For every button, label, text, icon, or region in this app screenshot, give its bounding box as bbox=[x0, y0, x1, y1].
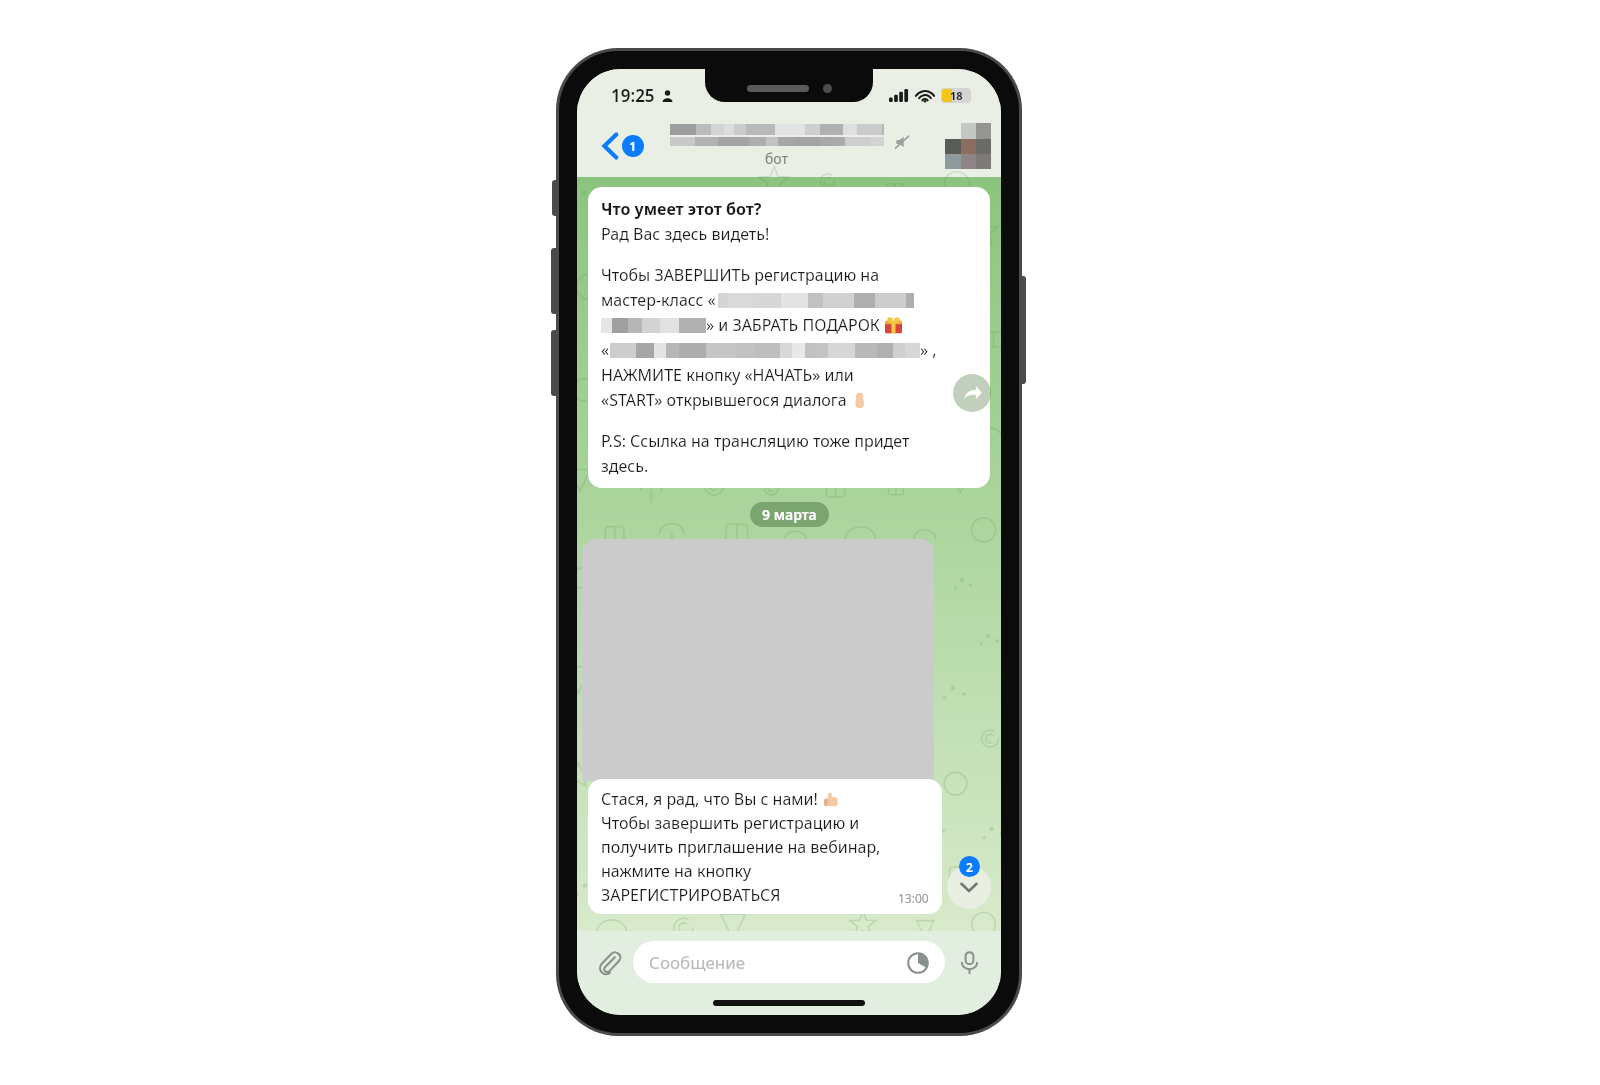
staticText: Чтобы завершить регистрацию и bbox=[601, 812, 860, 834]
staticText: 9 марта bbox=[762, 505, 817, 524]
staticText: Рад Вас здесь видеть! bbox=[601, 223, 770, 245]
staticText: 19:25 bbox=[611, 84, 655, 107]
staticText: « bbox=[601, 339, 610, 361]
button[interactable]: Forward bbox=[953, 374, 991, 412]
button[interactable]: Scroll to bottom bbox=[947, 865, 991, 909]
staticText: «START» открывшегося диалога bbox=[601, 389, 851, 411]
staticText: 1 bbox=[629, 137, 637, 155]
button[interactable]: Сообщение bbox=[633, 941, 945, 983]
button[interactable]: Что умеет этот бот? bbox=[588, 187, 990, 488]
staticText: P.S: Ссылка на трансляцию тоже придет bbox=[601, 430, 910, 452]
staticText: мастер-класс « bbox=[601, 289, 716, 311]
staticText: получить приглашение на вебинар, bbox=[601, 836, 881, 858]
button[interactable]: 9 марта bbox=[750, 502, 829, 527]
staticText: здесь. bbox=[601, 455, 649, 477]
staticText: 18 bbox=[950, 88, 963, 103]
staticText: Что умеет этот бот? bbox=[601, 198, 762, 220]
button[interactable]: Voice message bbox=[949, 942, 989, 982]
button[interactable]: Attach bbox=[589, 942, 629, 982]
button[interactable]: Photo bbox=[582, 539, 934, 781]
button[interactable]: Profile photo bbox=[945, 123, 991, 169]
staticText: Сообщение bbox=[649, 951, 746, 974]
button[interactable]: Back bbox=[599, 127, 648, 165]
staticText: » и ЗАБРАТЬ ПОДАРОК bbox=[706, 314, 885, 336]
staticText: бот bbox=[765, 149, 789, 168]
staticText: НАЖМИТЕ кнопку «НАЧАТЬ» или bbox=[601, 364, 854, 386]
staticText: 13:00 bbox=[898, 890, 929, 906]
other: Stickers bbox=[907, 952, 929, 974]
staticText: ЗАРЕГИСТРИРОВАТЬСЯ bbox=[601, 884, 781, 906]
staticText: Чтобы ЗАВЕРШИТЬ регистрацию на bbox=[601, 264, 880, 286]
staticText: » , bbox=[920, 339, 937, 361]
staticText: 2 bbox=[966, 859, 973, 875]
staticText: Стася, я рад, что Вы с нами! bbox=[601, 788, 823, 810]
button[interactable]: Стася, я рад, что Вы с нами! bbox=[588, 779, 942, 914]
staticText: нажмите на кнопку bbox=[601, 860, 752, 882]
